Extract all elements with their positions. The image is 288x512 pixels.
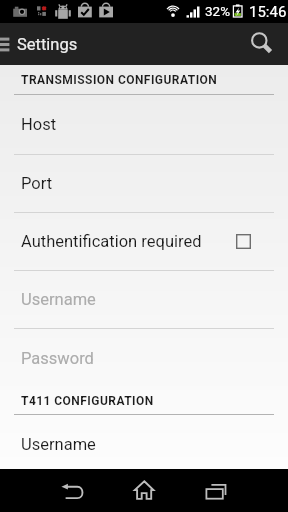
- button[interactable]: Navigation drawer: [0, 23, 14, 65]
- staticText: 15:46: [249, 3, 287, 21]
- button[interactable]: Password: [0, 329, 288, 387]
- staticText: 32%: [205, 3, 231, 19]
- button[interactable]: Back: [36, 469, 108, 512]
- staticText: Username: [21, 290, 96, 309]
- button[interactable]: Port: [0, 155, 288, 213]
- staticText: Port: [21, 174, 53, 193]
- button[interactable]: Host: [0, 95, 288, 155]
- button[interactable]: Username: [0, 271, 288, 329]
- button[interactable]: Search: [238, 23, 288, 65]
- staticText: Password: [21, 349, 94, 368]
- button[interactable]: Authentification required: [0, 213, 288, 271]
- button[interactable]: Recent apps: [180, 469, 252, 512]
- staticText: T411 CONFIGURATION: [21, 394, 154, 408]
- staticText: Authentification required: [21, 232, 236, 251]
- staticText: Settings: [17, 35, 78, 54]
- button[interactable]: Home: [108, 469, 180, 512]
- staticText: Host: [21, 115, 57, 134]
- button[interactable]: Username: [0, 415, 288, 469]
- staticText: TRANSMISSION CONFIGURATION: [21, 73, 218, 87]
- staticText: Username: [21, 435, 96, 454]
